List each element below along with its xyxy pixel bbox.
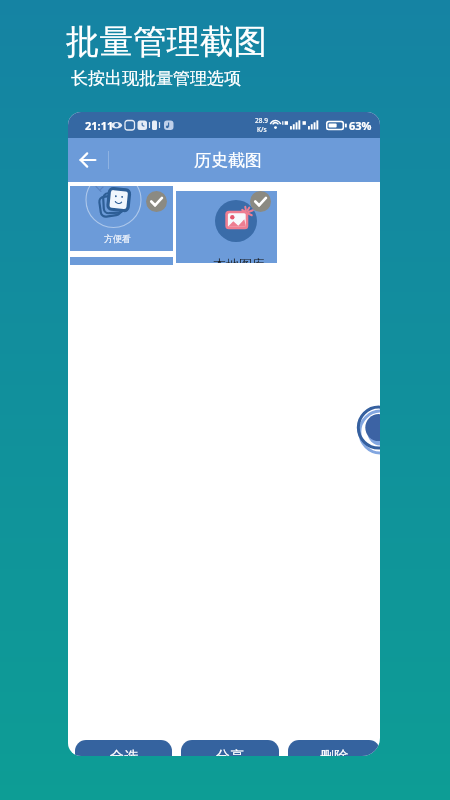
- button[interactable]: Selected: [146, 191, 167, 212]
- button[interactable]: Selected: [250, 191, 271, 212]
- staticText: 分享: [216, 748, 244, 756]
- staticText: 63%: [349, 118, 372, 133]
- staticText: 28.9: [255, 116, 268, 125]
- staticText: K/s: [257, 125, 267, 134]
- staticText: 21:11: [85, 118, 114, 133]
- staticText: 删除: [320, 748, 348, 756]
- button[interactable]: 分享: [181, 740, 279, 756]
- button[interactable]: 删除: [288, 740, 380, 756]
- staticText: 批量管理截图: [66, 21, 267, 63]
- staticText: 全选: [110, 748, 138, 756]
- button[interactable]: 本地图库: [176, 191, 277, 263]
- button[interactable]: 方便看: [70, 186, 173, 251]
- button[interactable]: 全选: [75, 740, 172, 756]
- staticText: 方便看: [104, 233, 131, 244]
- button[interactable]: Back: [71, 143, 105, 177]
- button[interactable]: Floating assistant: [356, 406, 380, 458]
- staticText: 长按出现批量管理选项: [71, 68, 241, 89]
- staticText: 历史截图: [194, 150, 262, 171]
- staticText: 本地图库: [213, 256, 265, 263]
